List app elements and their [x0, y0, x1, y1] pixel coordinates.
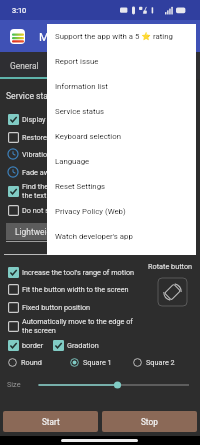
button[interactable]: Language — [47, 149, 196, 174]
staticText: Vibration — [22, 150, 52, 159]
button[interactable]: Stop — [102, 411, 197, 432]
button[interactable]: Square 2 — [133, 355, 175, 369]
staticText: Report issue — [55, 57, 99, 66]
staticText: Square 2 — [146, 358, 175, 367]
button[interactable]: border — [0, 338, 200, 352]
staticText: Increase the tool's range of motion — [22, 268, 135, 277]
button[interactable]: Service status — [47, 99, 196, 124]
button[interactable]: Lightweight — [6, 223, 96, 240]
button[interactable]: Rotate button — [158, 278, 187, 306]
staticText: Watch developer's app — [55, 232, 133, 241]
staticText: Language — [55, 157, 90, 166]
button[interactable]: Round — [8, 355, 42, 369]
staticText: Service status — [6, 91, 60, 101]
button[interactable]: Privacy Policy (Web) — [47, 199, 196, 224]
button[interactable]: Increase the tool's range of motion — [0, 265, 200, 279]
button[interactable]: Start — [3, 411, 98, 432]
button[interactable]: Information list — [47, 74, 196, 99]
button[interactable]: General — [0, 52, 48, 79]
staticText: Lightweight — [15, 227, 59, 237]
staticText: Reset Settings — [55, 182, 106, 191]
staticText: Square 1 — [83, 358, 112, 367]
staticText: Keyboard selection — [55, 132, 122, 141]
staticText: Find the tool by the text — [22, 182, 72, 200]
button[interactable]: Reset Settings — [47, 174, 196, 199]
button[interactable]: App icon — [10, 29, 25, 44]
staticText: Round — [21, 358, 42, 367]
staticText: Fade away — [22, 168, 57, 177]
button[interactable]: Find the tool by the text — [0, 180, 200, 202]
staticText: Fit the button width to the screen — [22, 285, 129, 294]
staticText: General — [10, 61, 39, 71]
button[interactable]: Automatically move to the edge of the sc… — [0, 315, 200, 337]
button[interactable]: Report issue — [47, 49, 196, 74]
staticText: Gradation — [67, 341, 99, 350]
button[interactable]: Do not show — [0, 203, 200, 217]
staticText: Display the tool — [22, 115, 72, 124]
button[interactable]: Restore the tool — [0, 130, 200, 144]
button[interactable]: Display the tool — [0, 112, 200, 126]
staticText: Automatically move to the edge of the sc… — [22, 317, 133, 335]
staticText: Size — [7, 380, 21, 389]
staticText: Privacy Policy (Web) — [55, 207, 126, 216]
staticText: Do not show — [22, 206, 63, 215]
button[interactable]: Fit the button width to the screen — [0, 282, 200, 296]
staticText: Stop — [141, 417, 158, 427]
button[interactable]: Gradation — [45, 338, 200, 352]
staticText: Rotate button — [148, 262, 193, 271]
button[interactable]: Support the app with a 5 ⭐ rating — [47, 24, 196, 49]
staticText: M — [39, 30, 50, 43]
staticText: Restore the tool — [22, 133, 74, 142]
button[interactable]: Vibration — [0, 147, 200, 161]
button[interactable]: Fade away — [0, 165, 200, 179]
staticText: 3:10 — [12, 6, 27, 15]
button[interactable]: Keyboard selection — [47, 124, 196, 149]
staticText: Support the app with a 5 ⭐ rating — [55, 32, 173, 41]
staticText: Fixed button position — [22, 303, 91, 312]
staticText: Service status — [55, 107, 104, 116]
staticText: border — [22, 341, 44, 350]
staticText: Information list — [55, 82, 108, 91]
staticText: Start — [42, 417, 60, 427]
button[interactable]: Watch developer's app — [47, 224, 196, 249]
button[interactable]: Square 1 — [70, 355, 112, 369]
button[interactable]: Fixed button position — [0, 300, 200, 314]
